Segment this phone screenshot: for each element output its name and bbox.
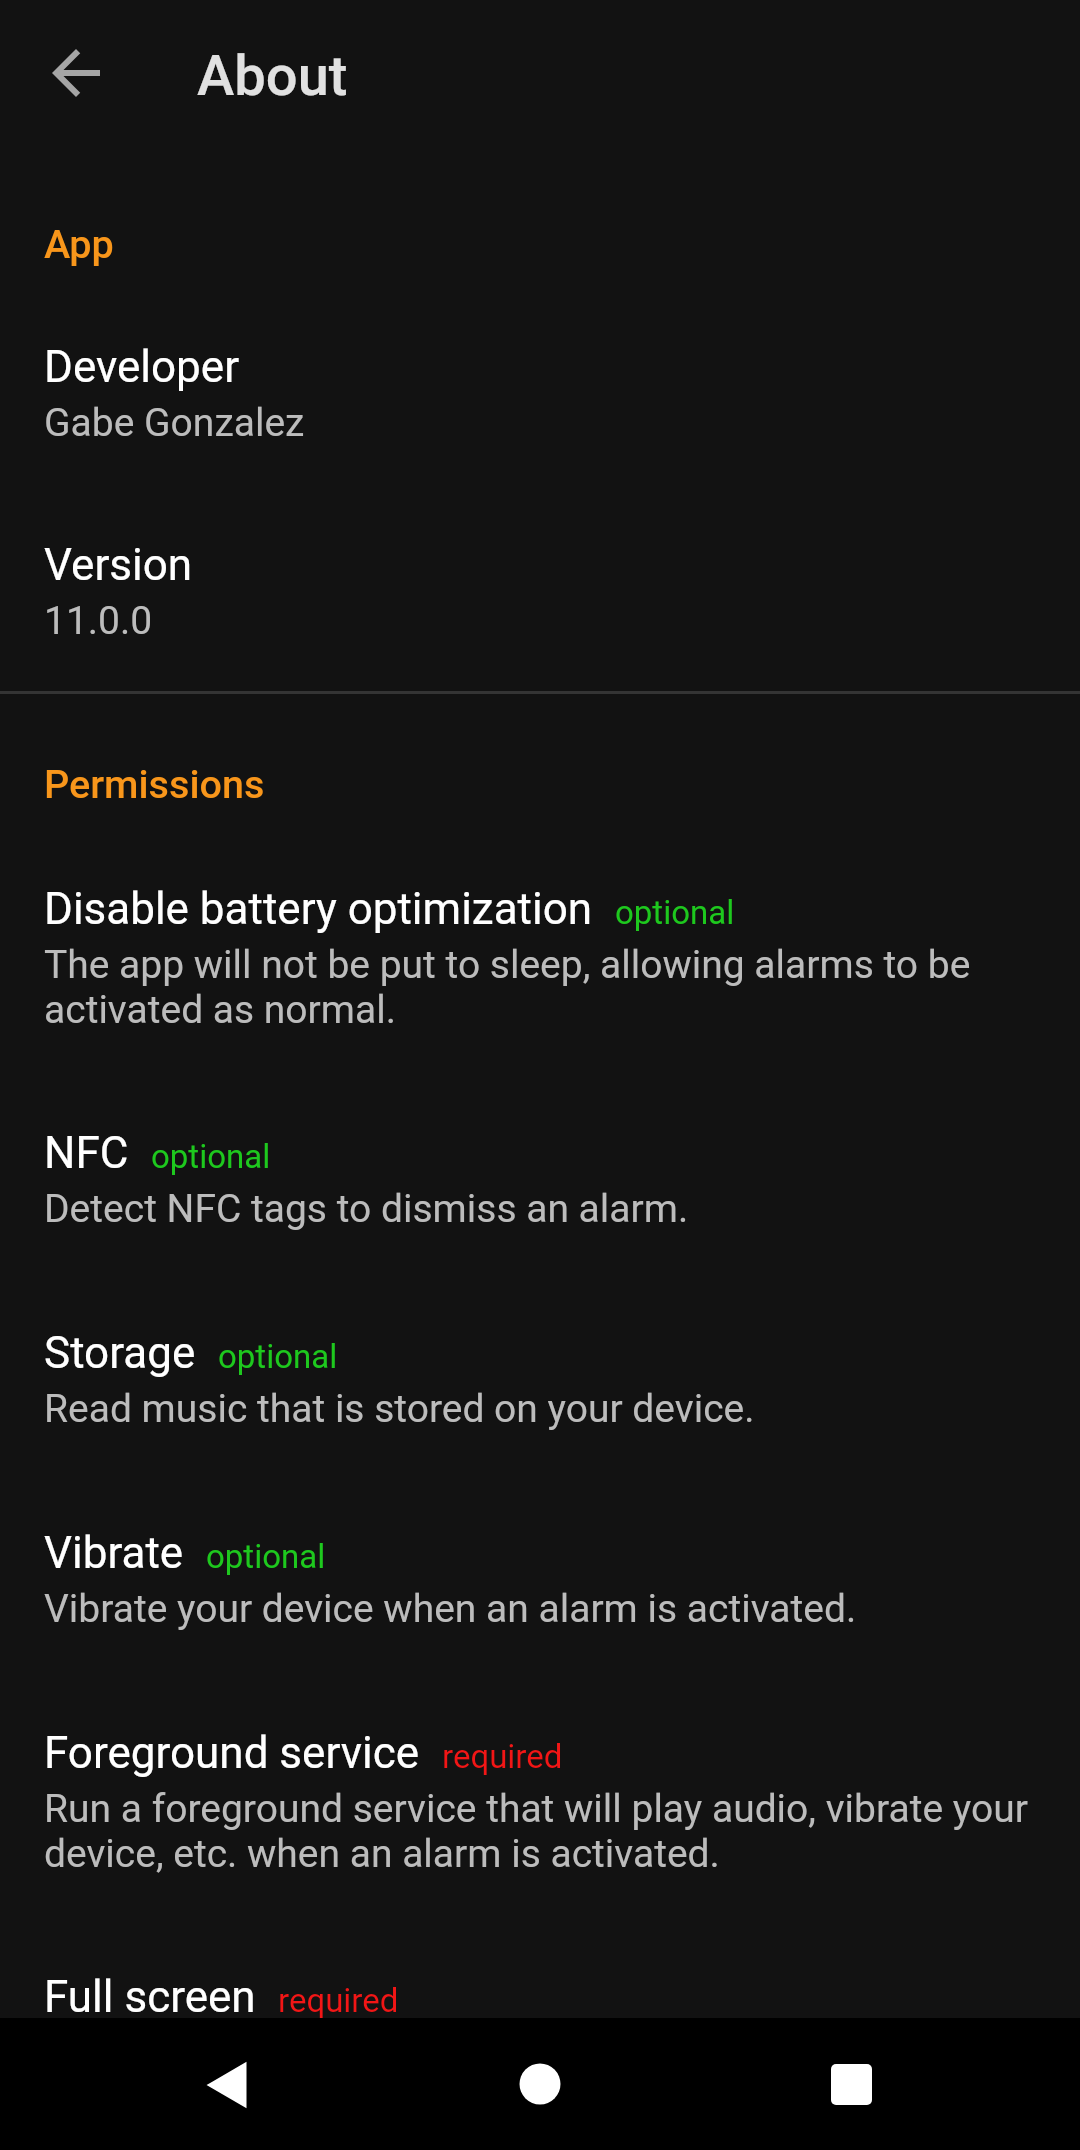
staticText: Full screen bbox=[44, 1971, 256, 2023]
button[interactable]: Recent apps bbox=[785, 2018, 917, 2150]
staticText: optional bbox=[615, 893, 735, 932]
button[interactable]: Navigate up bbox=[21, 18, 131, 128]
staticText: Detect NFC tags to dismiss an alarm. bbox=[44, 1186, 689, 1232]
staticText: optional bbox=[206, 1537, 326, 1576]
button[interactable]: Version bbox=[0, 491, 1080, 691]
staticText: Version bbox=[44, 539, 193, 591]
staticText: optional bbox=[218, 1337, 338, 1376]
staticText: Run a foreground service that will play … bbox=[44, 1786, 1028, 1832]
staticText: App bbox=[44, 221, 114, 267]
button[interactable]: NFC bbox=[0, 1079, 1080, 1279]
button[interactable]: Developer bbox=[0, 293, 1080, 491]
staticText: device, etc. when an alarm is activated. bbox=[44, 1831, 720, 1877]
staticText: Read music that is stored on your device… bbox=[44, 1386, 755, 1432]
staticText: The app will not be put to sleep, allowi… bbox=[44, 942, 971, 988]
staticText: activated as normal. bbox=[44, 987, 396, 1033]
staticText: optional bbox=[151, 1137, 271, 1176]
staticText: Permissions bbox=[44, 761, 265, 807]
staticText: Developer bbox=[44, 341, 240, 393]
button[interactable]: Home bbox=[474, 2018, 606, 2150]
staticText: About bbox=[197, 43, 348, 109]
staticText: Disable battery optimization bbox=[44, 883, 593, 935]
button[interactable]: Disable battery optimization bbox=[0, 835, 1080, 1079]
staticText: NFC bbox=[44, 1127, 129, 1179]
button[interactable]: Full screen bbox=[0, 1923, 1080, 2123]
button[interactable]: Vibrate bbox=[0, 1479, 1080, 1679]
button[interactable]: Storage bbox=[0, 1279, 1080, 1479]
button[interactable]: Foreground service bbox=[0, 1679, 1080, 1923]
button[interactable]: Back bbox=[161, 2018, 293, 2150]
staticText: Vibrate bbox=[44, 1527, 184, 1579]
staticText: Gabe Gonzalez bbox=[44, 400, 305, 446]
staticText: required bbox=[442, 1737, 563, 1776]
staticText: required bbox=[278, 1981, 399, 2020]
staticText: Storage bbox=[44, 1327, 196, 1379]
staticText: 11.0.0 bbox=[44, 598, 153, 644]
staticText: Show a full screen activity when an alar… bbox=[44, 2030, 977, 2076]
staticText: Vibrate your device when an alarm is act… bbox=[44, 1586, 857, 1632]
staticText: Foreground service bbox=[44, 1727, 420, 1779]
